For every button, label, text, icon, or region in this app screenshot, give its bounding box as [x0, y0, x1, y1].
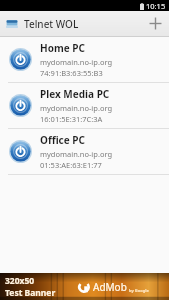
button[interactable]: Wake on LAN	[9, 94, 32, 117]
staticText: 10:15	[146, 1, 166, 11]
staticText: by Google	[129, 288, 149, 293]
staticText: 74:91:B3:63:55:B3	[40, 68, 103, 78]
staticText: Telnet WOL	[24, 17, 79, 31]
staticText: 16:01:5E:31:7C:3A	[40, 114, 103, 124]
staticText: 01:53:AE:63:E1:77	[40, 160, 102, 170]
staticText: Plex Media PC	[40, 87, 110, 101]
button[interactable]: Add host	[141, 11, 169, 36]
button[interactable]: Wake on LAN	[9, 48, 32, 71]
staticText: 320x50	[5, 275, 35, 287]
staticText: mydomain.no-ip.org	[40, 149, 113, 159]
button[interactable]: Wake on LAN	[9, 140, 32, 163]
staticText: Home PC	[40, 41, 85, 55]
staticText: mydomain.no-ip.org	[40, 103, 113, 113]
staticText: mydomain.no-ip.org	[40, 57, 113, 67]
staticText: Test Banner	[5, 287, 56, 299]
button[interactable]: Advertisement	[0, 273, 169, 300]
staticText: AdMob	[93, 280, 127, 294]
button[interactable]: Wake on LAN	[0, 37, 169, 82]
staticText: Office PC	[40, 133, 85, 147]
button[interactable]: Wake on LAN	[0, 83, 169, 128]
button[interactable]: Wake on LAN	[0, 129, 169, 174]
